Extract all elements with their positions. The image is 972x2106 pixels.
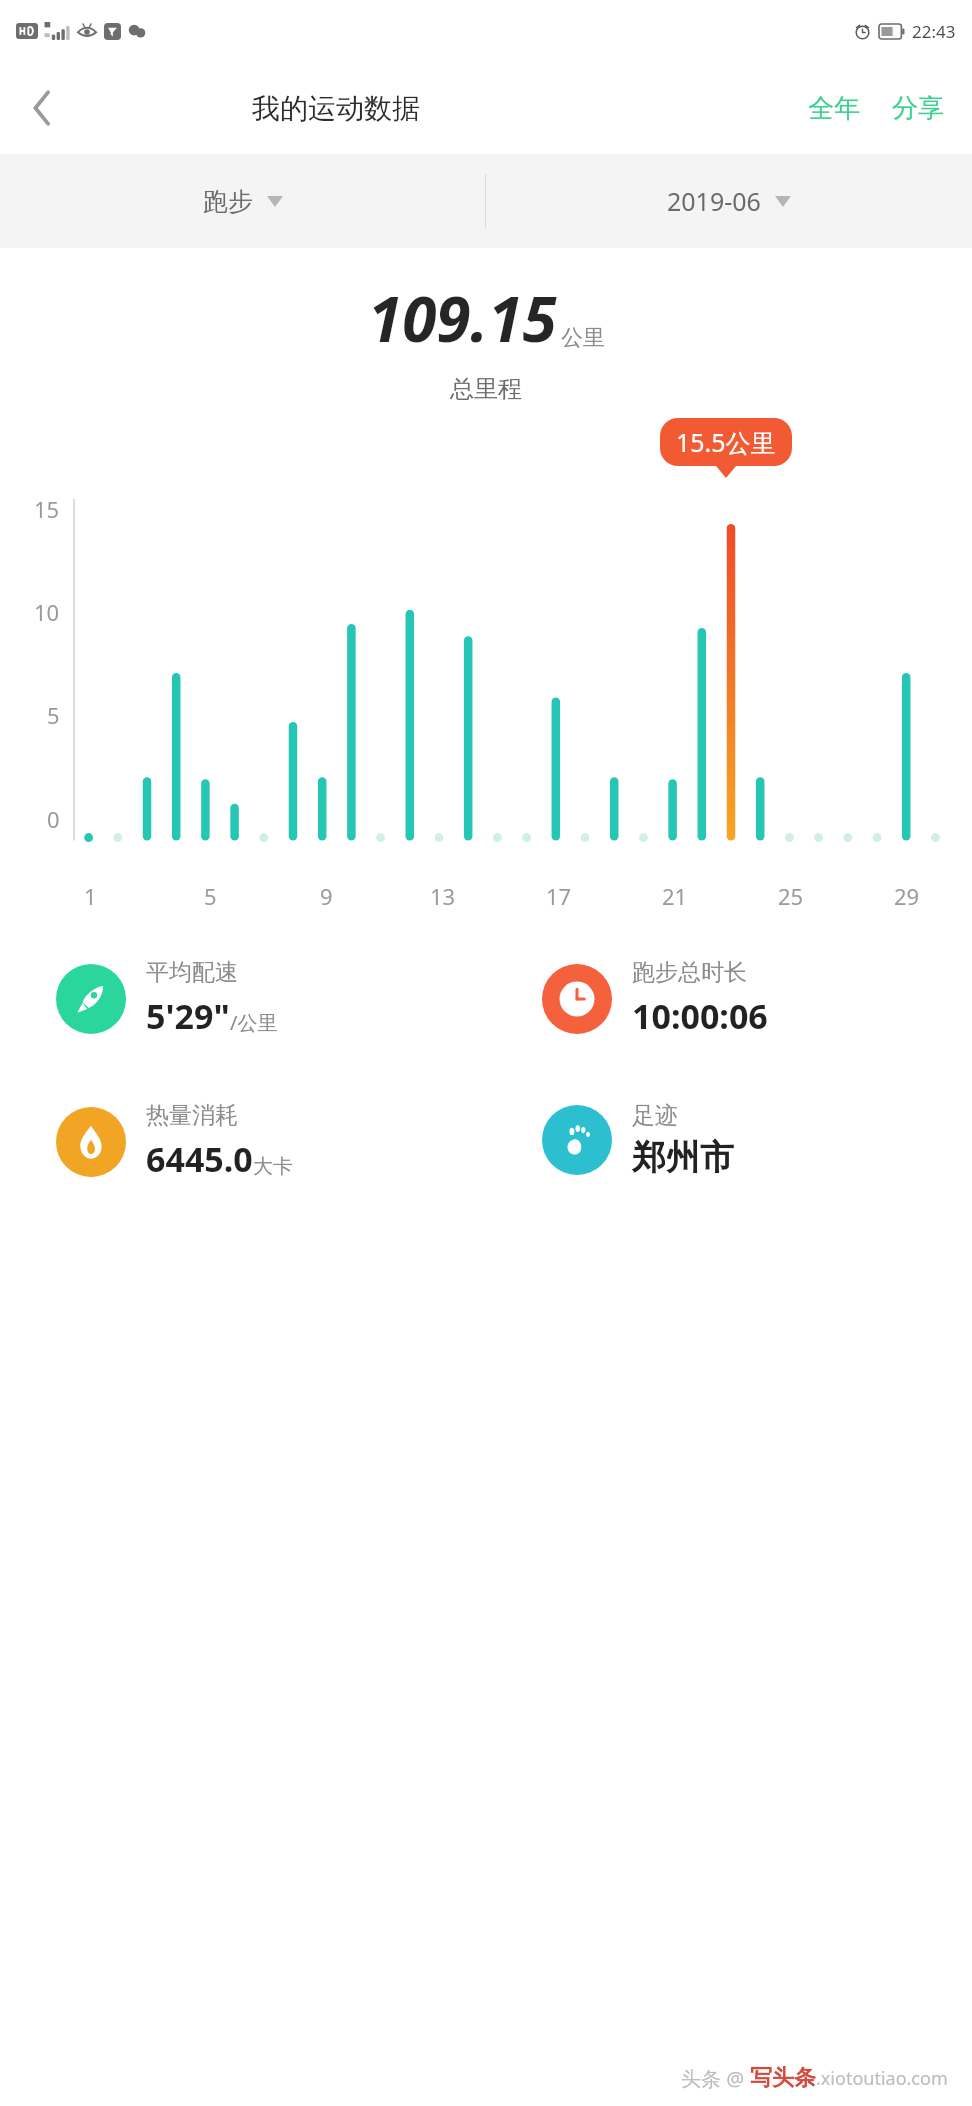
- staticText: 全年: [808, 92, 860, 125]
- other: Average pace: [56, 964, 126, 1034]
- staticText: 15: [34, 494, 60, 524]
- staticText: 写头条: [750, 2064, 816, 2092]
- staticText: 分享: [892, 92, 944, 125]
- button[interactable]: 全年: [798, 84, 870, 133]
- other: Total run time: [542, 964, 612, 1034]
- button[interactable]: Back: [10, 76, 74, 140]
- button[interactable]: 2019-06: [486, 154, 972, 248]
- staticText: 郑州市: [632, 1136, 734, 1179]
- staticText: 29: [894, 881, 920, 911]
- staticText: 17: [546, 881, 572, 911]
- staticText: 13: [430, 881, 456, 911]
- staticText: 109.15: [368, 276, 557, 360]
- staticText: 9: [320, 881, 333, 911]
- button[interactable]: Calories burned: [0, 1095, 486, 1188]
- staticText: .xiotoutiao.com: [816, 2066, 948, 2091]
- staticText: 5: [204, 881, 217, 911]
- staticText: 2019-06: [667, 184, 761, 218]
- staticText: 5: [47, 700, 60, 730]
- staticText: 10: [34, 597, 60, 627]
- staticText: 21: [662, 881, 688, 911]
- staticText: 足迹: [632, 1101, 678, 1130]
- staticText: 大卡: [253, 1154, 293, 1179]
- staticText: /公里: [230, 1009, 278, 1036]
- staticText: 平均配速: [146, 958, 238, 987]
- staticText: 1: [84, 881, 97, 911]
- button[interactable]: 跑步: [0, 154, 485, 248]
- staticText: 我的运动数据: [252, 91, 420, 126]
- staticText: 跑步总时长: [632, 958, 747, 987]
- staticText: 跑步: [203, 186, 253, 217]
- staticText: 15.5公里: [676, 425, 776, 459]
- staticText: 6445.0: [146, 1136, 253, 1182]
- button[interactable]: Total run time: [486, 952, 972, 1045]
- staticText: 头条 @: [681, 2065, 750, 2092]
- staticText: 热量消耗: [146, 1101, 238, 1130]
- staticText: 25: [778, 881, 804, 911]
- button[interactable]: 15.5公里: [660, 418, 792, 466]
- button[interactable]: Average pace: [0, 952, 486, 1045]
- staticText: 10:00:06: [632, 993, 768, 1039]
- other: Calories burned: [56, 1107, 126, 1177]
- button[interactable]: Footprints: [486, 1095, 972, 1185]
- staticText: 0: [47, 804, 60, 834]
- staticText: 公里: [561, 324, 605, 352]
- button[interactable]: 分享: [882, 84, 954, 133]
- staticText: 22:43: [912, 20, 956, 43]
- staticText: 5'29": [146, 993, 230, 1039]
- other: Footprints: [542, 1105, 612, 1175]
- staticText: 总里程: [450, 374, 522, 404]
